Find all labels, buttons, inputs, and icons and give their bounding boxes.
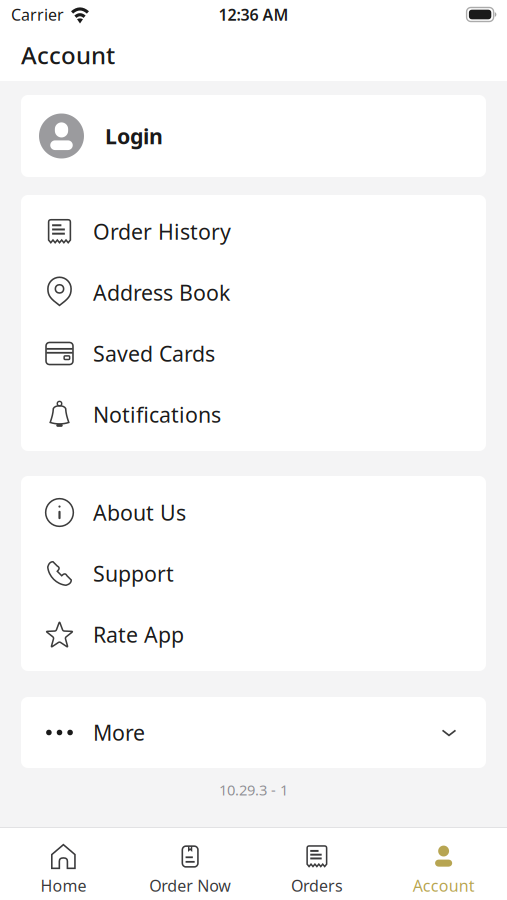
staticText: Order Now bbox=[149, 875, 231, 896]
staticText: Carrier bbox=[11, 4, 64, 25]
button[interactable]: Order Now bbox=[127, 828, 254, 900]
button[interactable]: Rate App bbox=[21, 604, 486, 665]
staticText: Home bbox=[40, 875, 86, 896]
staticText: Notifications bbox=[93, 400, 221, 429]
button[interactable]: More bbox=[21, 697, 486, 768]
staticText: Rate App bbox=[93, 620, 184, 649]
staticText: Order History bbox=[93, 217, 231, 246]
staticText: Orders bbox=[291, 875, 343, 896]
button[interactable]: Support bbox=[21, 543, 486, 604]
staticText: Account bbox=[413, 875, 475, 896]
staticText: 10.29.3 - 1 bbox=[219, 780, 288, 799]
staticText: Account bbox=[21, 39, 115, 71]
button[interactable]: Saved Cards bbox=[21, 323, 486, 384]
button[interactable]: Address Book bbox=[21, 262, 486, 323]
button[interactable]: Login bbox=[21, 95, 486, 177]
button[interactable]: Account bbox=[380, 828, 507, 900]
button[interactable]: Order History bbox=[21, 201, 486, 262]
staticText: Login bbox=[105, 122, 163, 150]
staticText: Saved Cards bbox=[93, 339, 215, 368]
button[interactable]: About Us bbox=[21, 482, 486, 543]
button[interactable]: Orders bbox=[253, 828, 380, 900]
button[interactable]: Notifications bbox=[21, 384, 486, 445]
staticText: Support bbox=[93, 559, 174, 588]
button[interactable]: Home bbox=[0, 828, 127, 900]
staticText: More bbox=[93, 718, 145, 747]
staticText: 12:36 AM bbox=[218, 4, 288, 25]
staticText: Address Book bbox=[93, 278, 230, 307]
staticText: About Us bbox=[93, 498, 186, 527]
